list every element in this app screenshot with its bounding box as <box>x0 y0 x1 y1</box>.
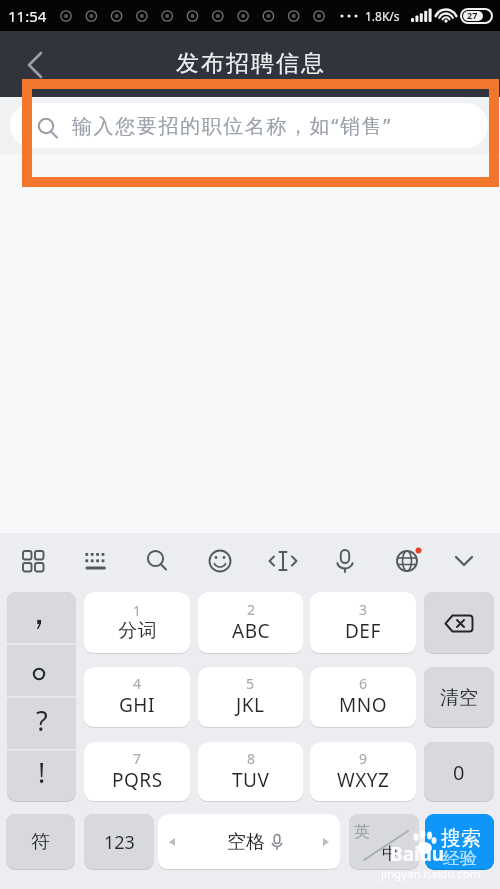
button[interactable]: 2 <box>198 592 303 654</box>
staticText: 11:54 <box>8 6 47 26</box>
staticText: 7 <box>133 749 142 768</box>
button[interactable] <box>0 533 500 591</box>
button[interactable]: 0 <box>424 742 494 802</box>
staticText: MNO <box>339 692 388 718</box>
staticText: ? <box>36 702 48 739</box>
button[interactable]: 123 <box>84 814 154 870</box>
staticText: 清空 <box>440 686 478 710</box>
button[interactable] <box>0 42 44 86</box>
button[interactable]: 5 <box>198 667 303 728</box>
staticText: 123 <box>104 830 135 855</box>
staticText: ， <box>21 592 57 634</box>
staticText: 0 <box>453 759 465 786</box>
staticText: 4 <box>133 674 142 693</box>
staticText: 经验 <box>443 848 477 869</box>
button[interactable]: 6 <box>310 667 416 728</box>
staticText: 6 <box>359 674 368 693</box>
staticText: 2 <box>247 600 256 619</box>
button[interactable]: ! <box>7 749 76 801</box>
button[interactable]: 符 <box>6 814 75 870</box>
staticText: 1.8K/s <box>365 8 400 24</box>
button[interactable]: 英 <box>349 814 419 870</box>
button[interactable]: ， <box>7 592 76 644</box>
button[interactable]: 7 <box>84 742 190 802</box>
button[interactable]: 清空 <box>424 667 494 728</box>
button[interactable]: 1 <box>84 592 190 654</box>
staticText: 输入您要招的职位名称，如“销售” <box>72 112 392 139</box>
button[interactable]: 4 <box>84 667 190 728</box>
staticText: 符 <box>31 830 50 854</box>
staticText: 3 <box>359 600 368 619</box>
staticText: 发布招聘信息 <box>175 49 325 78</box>
staticText: 搜索 <box>441 826 481 851</box>
staticText: 1 <box>133 601 142 620</box>
button[interactable]: 搜索 <box>425 814 494 870</box>
staticText: ! <box>38 754 46 791</box>
button[interactable]: 空格 <box>158 814 340 870</box>
button[interactable]: 输入您要招的职位名称，如“销售” <box>10 103 488 148</box>
button[interactable] <box>424 592 494 654</box>
staticText: 中 <box>382 843 399 864</box>
staticText: TUV <box>232 767 270 793</box>
button[interactable]: 3 <box>310 592 416 654</box>
button[interactable] <box>7 644 76 696</box>
staticText: 9 <box>359 749 368 768</box>
staticText: GHI <box>119 692 155 718</box>
staticText: 27 <box>467 9 478 21</box>
staticText: Baidu <box>390 841 445 867</box>
staticText: 英 <box>354 822 370 842</box>
staticText: ABC <box>232 618 270 644</box>
button[interactable]: ? <box>7 697 76 749</box>
staticText: PQRS <box>112 767 163 793</box>
staticText: 空格 <box>227 830 265 854</box>
staticText: 8 <box>247 749 256 768</box>
staticText: DEF <box>345 618 381 644</box>
button[interactable]: 8 <box>198 742 303 802</box>
staticText: WXYZ <box>337 767 390 793</box>
staticText: jingyan.baidu.com <box>381 866 481 882</box>
button[interactable]: 9 <box>310 742 416 802</box>
staticText: 5 <box>246 674 255 693</box>
staticText: JKL <box>236 692 265 718</box>
staticText: 分词 <box>118 619 157 643</box>
